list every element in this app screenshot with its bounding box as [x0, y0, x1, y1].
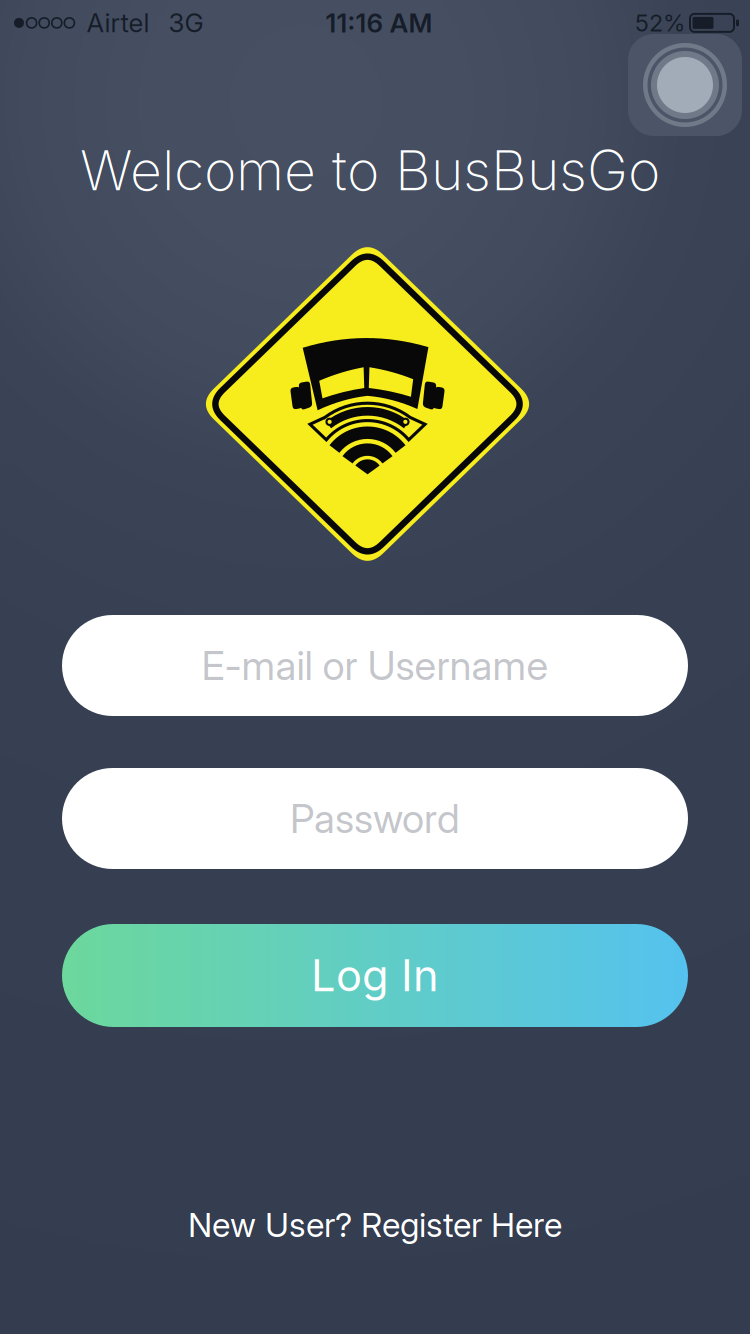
button[interactable]: AssistiveTouch — [628, 34, 742, 136]
staticText: New User? Register Here — [188, 1205, 562, 1245]
button[interactable]: New User? Register Here — [176, 1193, 574, 1257]
button[interactable]: Log In — [62, 924, 688, 1027]
staticText: Welcome to BusBusGo — [80, 136, 660, 203]
staticText: 11:16 AM — [325, 7, 432, 39]
staticText: 52% — [635, 9, 685, 37]
staticText: Log In — [311, 949, 439, 1002]
staticText: E-mail or Username — [201, 641, 548, 690]
button[interactable]: E-mail or Username — [62, 615, 688, 716]
staticText: Airtel — [86, 7, 149, 38]
staticText: Password — [290, 794, 460, 843]
staticText: 3G — [168, 7, 203, 38]
button[interactable]: Password — [62, 768, 688, 869]
